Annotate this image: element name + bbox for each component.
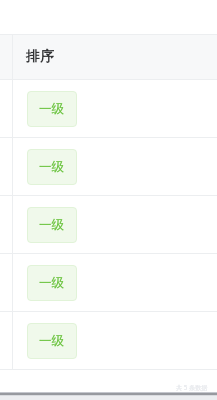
staticText: 一级 <box>39 159 65 175</box>
button[interactable]: 排序 <box>13 35 217 79</box>
button[interactable]: 一级 <box>27 91 77 127</box>
button[interactable]: 一级 <box>27 207 77 243</box>
staticText: 一级 <box>39 333 65 349</box>
button[interactable]: 一级 <box>27 265 77 301</box>
staticText: 共 5 条数据 <box>176 383 208 391</box>
staticText: 排序 <box>26 48 54 66</box>
staticText: 一级 <box>39 275 65 291</box>
staticText: 一级 <box>39 101 65 117</box>
button[interactable]: 一级 <box>27 323 77 359</box>
button[interactable]: 一级 <box>27 149 77 185</box>
staticText: 一级 <box>39 217 65 233</box>
